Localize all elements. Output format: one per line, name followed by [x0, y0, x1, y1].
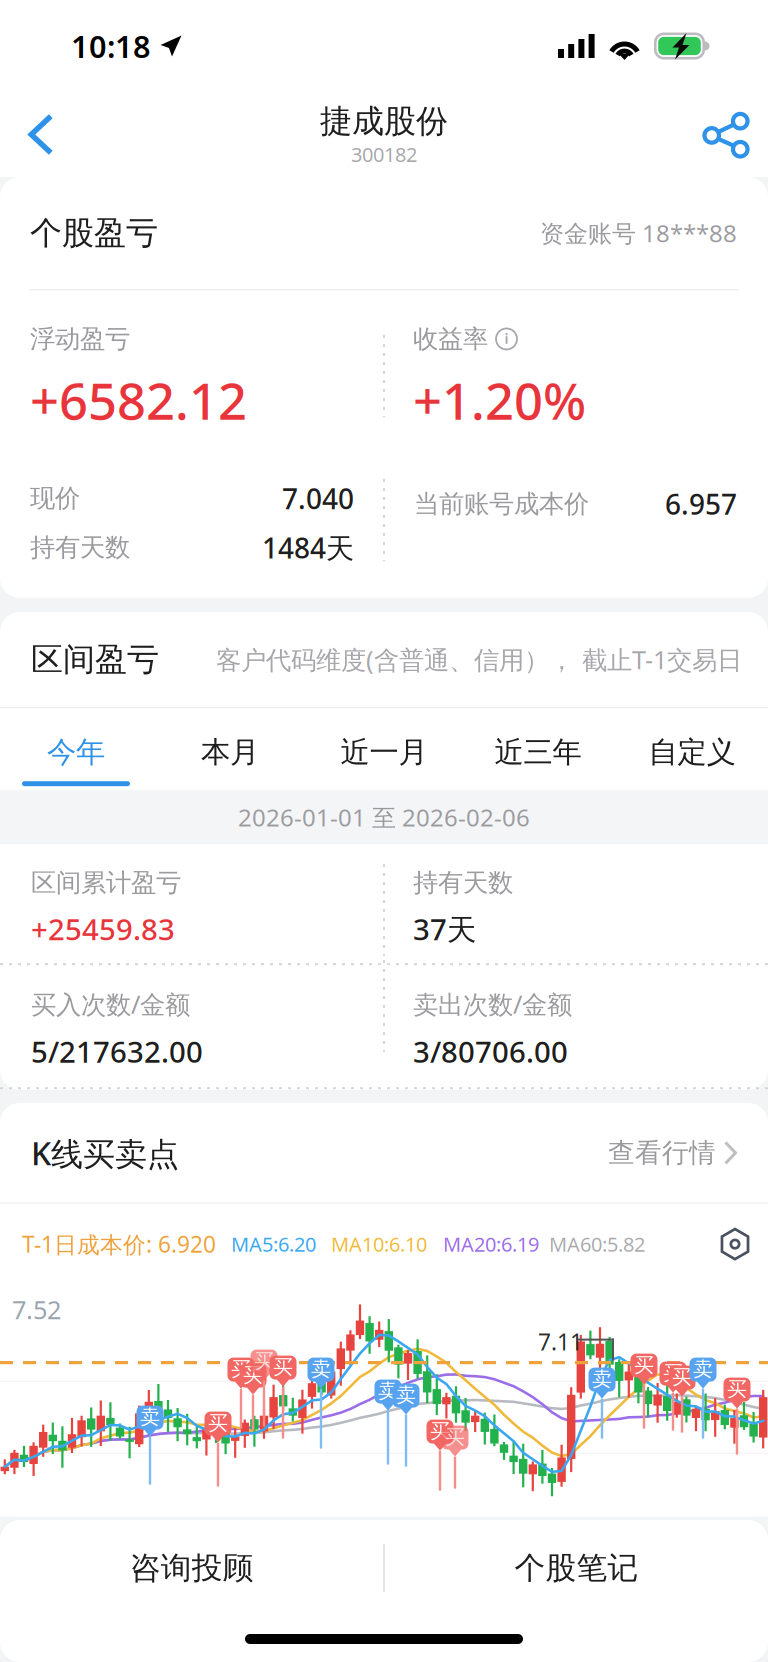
staticText: 客户代码维度(含普通、信用）， 截止T-1交易日: [216, 643, 742, 676]
staticText: 7.52: [12, 1293, 61, 1326]
staticText: 卖: [396, 1383, 416, 1407]
staticText: 浮动盈亏: [30, 323, 130, 354]
button[interactable]: Chart settings: [719, 1228, 751, 1260]
staticText: 今年: [47, 734, 105, 770]
staticText: 买: [254, 1349, 274, 1373]
staticText: 买: [672, 1365, 692, 1389]
staticText: 5/217632.00: [31, 1032, 203, 1071]
staticText: 37天: [413, 909, 476, 948]
staticText: 本月: [201, 734, 259, 770]
staticText: 区间盈亏: [31, 640, 159, 679]
staticText: 300182: [351, 141, 417, 167]
staticText: 自定义: [648, 734, 735, 770]
button[interactable]: 近一月: [330, 708, 438, 790]
staticText: 资金账号 18***88: [540, 217, 737, 249]
staticText: 近三年: [494, 734, 581, 770]
staticText: MA20:6.19: [443, 1230, 539, 1258]
staticText: T-1日成本价: 6.920: [22, 1229, 216, 1259]
staticText: 卖: [311, 1357, 331, 1381]
staticText: +25459.83: [31, 909, 175, 948]
staticText: 买: [634, 1353, 654, 1377]
staticText: 买: [445, 1425, 465, 1449]
staticText: 买: [208, 1411, 228, 1435]
staticText: 买: [430, 1419, 450, 1443]
staticText: 卖: [592, 1367, 612, 1391]
button[interactable]: 今年: [22, 708, 130, 790]
staticText: 1484天: [262, 529, 354, 566]
staticText: 当前账号成本价: [414, 488, 589, 519]
staticText: 买入次数/金额: [31, 987, 190, 1021]
staticText: 个股笔记: [514, 1549, 638, 1587]
staticText: 个股盈亏: [30, 213, 158, 253]
staticText: +6582.12: [30, 366, 247, 434]
staticText: 持有天数: [413, 867, 513, 898]
button[interactable]: 查看行情: [608, 1136, 737, 1169]
staticText: 卖出次数/金额: [413, 987, 572, 1021]
staticText: 买: [273, 1355, 293, 1379]
staticText: 7.040: [282, 480, 354, 517]
button[interactable]: Share: [684, 92, 768, 177]
staticText: 持有天数: [30, 532, 130, 563]
staticText: 卖: [140, 1405, 160, 1429]
button[interactable]: 本月: [176, 708, 284, 790]
staticText: +1.20%: [413, 366, 586, 434]
staticText: 查看行情: [608, 1136, 716, 1169]
staticText: 买: [663, 1361, 683, 1385]
staticText: 10:18: [71, 26, 151, 66]
staticText: MA10:6.10: [331, 1230, 427, 1258]
staticText: MA5:6.20: [231, 1230, 316, 1258]
button[interactable]: Back: [0, 92, 82, 177]
button[interactable]: 近三年: [484, 708, 592, 790]
button[interactable]: 个股笔记: [385, 1520, 768, 1616]
staticText: K线买卖点: [31, 1132, 179, 1174]
staticText: 买: [243, 1363, 263, 1387]
staticText: 近一月: [340, 734, 427, 770]
button[interactable]: 咨询投顾: [0, 1520, 383, 1616]
button[interactable]: 自定义: [638, 708, 746, 790]
staticText: 现价: [30, 483, 80, 514]
staticText: 买: [231, 1357, 251, 1381]
staticText: 咨询投顾: [130, 1549, 254, 1587]
staticText: 7.11: [538, 1327, 583, 1357]
staticText: 3/80706.00: [413, 1032, 568, 1071]
staticText: 卖: [693, 1357, 713, 1381]
staticText: 捷成股份: [320, 102, 448, 141]
staticText: 6.957: [665, 485, 737, 523]
staticText: 2026-01-01 至 2026-02-06: [238, 801, 530, 833]
staticText: 收益率: [413, 323, 488, 354]
staticText: 买: [727, 1377, 747, 1401]
staticText: 区间累计盈亏: [31, 867, 181, 898]
staticText: 卖: [378, 1379, 398, 1403]
staticText: MA60:5.82: [549, 1230, 645, 1258]
